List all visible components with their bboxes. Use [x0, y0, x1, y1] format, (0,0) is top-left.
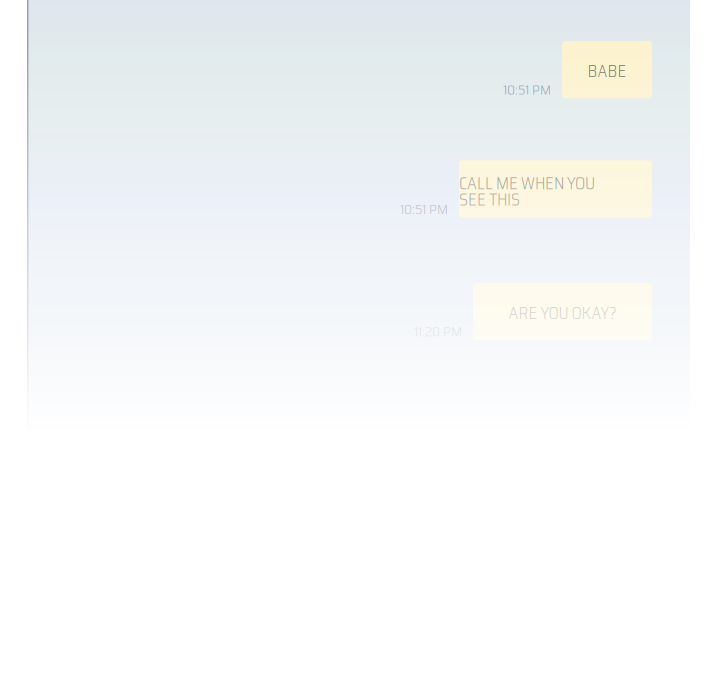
- staticText: BABE: [587, 62, 626, 80]
- staticText: 11:20 PM: [414, 323, 462, 340]
- button[interactable]: 11:20 PM: [27, 283, 652, 340]
- staticText: 10:51 PM: [400, 200, 448, 218]
- button[interactable]: 10:51 PM: [27, 160, 652, 218]
- staticText: CALL ME WHEN YOU SEE THIS: [459, 175, 595, 208]
- staticText: 10:51 PM: [503, 81, 551, 98]
- button[interactable]: 10:51 PM: [27, 41, 652, 98]
- staticText: ARE YOU OKAY?: [508, 304, 616, 322]
